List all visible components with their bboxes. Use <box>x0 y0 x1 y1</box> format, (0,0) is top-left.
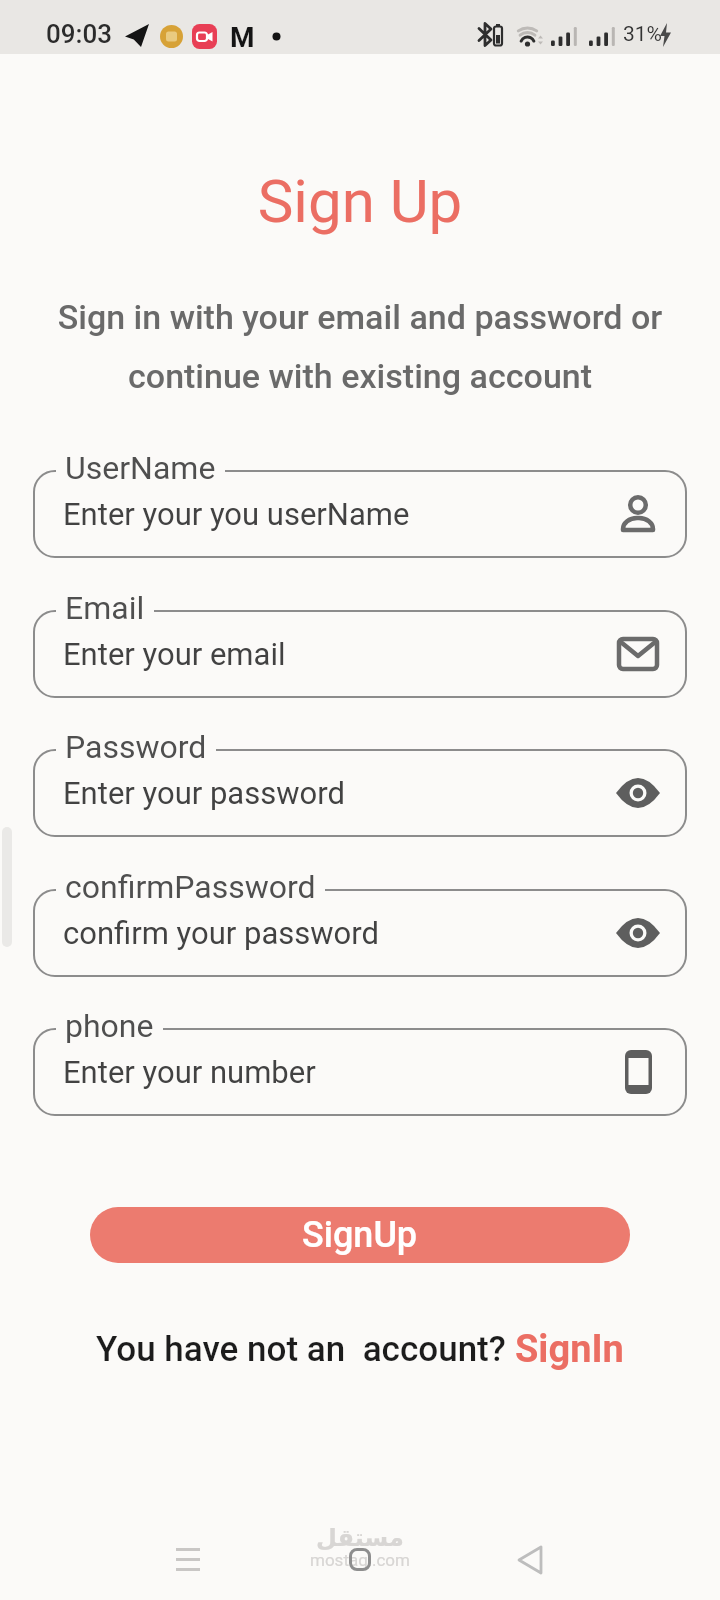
staticText: SignUp <box>302 1214 418 1256</box>
staticText: Sign Up <box>0 166 720 236</box>
staticText: confirm your password <box>63 915 379 951</box>
staticText: mostaql.com <box>310 1550 410 1570</box>
staticText: Enter your you userName <box>63 496 410 532</box>
staticText: Enter your password <box>63 775 345 811</box>
button[interactable]: Enter your you userName <box>33 470 687 558</box>
staticText: Sign in with your email and password or … <box>0 297 720 396</box>
button[interactable]: SignIn <box>515 1327 624 1372</box>
staticText: phone <box>65 1007 154 1045</box>
button[interactable]: SignUp <box>90 1207 630 1263</box>
staticText: confirmPassword <box>65 868 316 906</box>
staticText: مستقل <box>316 1524 404 1552</box>
staticText: Enter your email <box>63 636 286 672</box>
staticText: 09:03 <box>46 19 113 49</box>
staticText: UserName <box>65 449 216 487</box>
staticText: M <box>230 21 255 54</box>
staticText: Password <box>65 728 207 766</box>
staticText: 31% <box>623 22 662 47</box>
button[interactable]: Enter your email <box>33 610 687 698</box>
button[interactable]: Enter your password <box>33 749 687 837</box>
staticText: Enter your number <box>63 1054 316 1090</box>
staticText: You have not an account? <box>96 1329 515 1370</box>
button[interactable] <box>349 1548 371 1571</box>
staticText: Email <box>65 589 145 627</box>
button[interactable] <box>517 1545 543 1575</box>
button[interactable]: confirm your password <box>33 889 687 977</box>
button[interactable]: Enter your number <box>33 1028 687 1116</box>
button[interactable] <box>176 1548 200 1572</box>
